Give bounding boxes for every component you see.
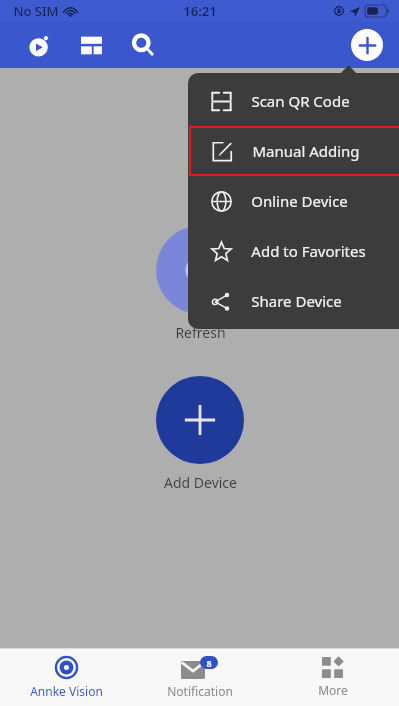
staticText: 16:21 [183,2,217,20]
button[interactable]: Add to Favorites [188,226,399,276]
staticText: Notification [167,683,233,699]
button[interactable]: 8 [133,649,266,706]
button[interactable]: Scan QR Code [188,76,399,126]
staticText: No SIM [13,2,59,20]
staticText: Manual Adding [252,141,360,161]
staticText: Add to Favorites [251,241,366,261]
button[interactable]: Search [126,28,160,62]
staticText: Add Device [164,473,237,492]
staticText: Online Device [251,191,348,211]
button[interactable]: Live view [22,28,56,62]
button[interactable]: More [266,649,399,706]
button[interactable]: Add [351,29,383,61]
button[interactable]: Annke Vision [0,649,133,706]
staticText: Annke Vision [30,683,103,699]
staticText: Refresh [175,323,226,342]
button[interactable]: Refresh [156,226,244,342]
button[interactable]: Layout [74,28,108,62]
button[interactable]: Share Device [188,276,399,326]
staticText: More [318,682,348,698]
button[interactable]: Online Device [188,176,399,226]
staticText: 8 [206,657,212,669]
button[interactable]: Add Device [156,376,244,492]
staticText: Share Device [251,291,342,311]
button[interactable]: Manual Adding [189,126,399,176]
staticText: Scan QR Code [251,91,350,111]
